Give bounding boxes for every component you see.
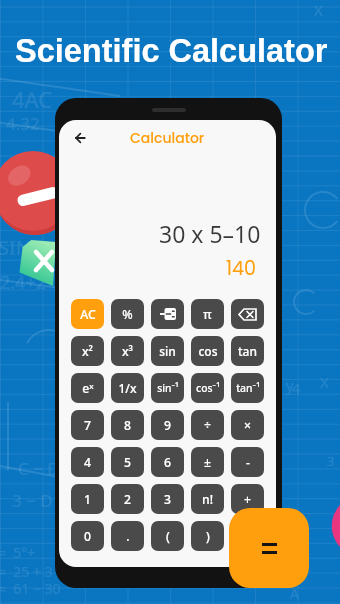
button[interactable]: tan⁻¹	[231, 373, 264, 403]
button[interactable]: Unit converter	[151, 299, 184, 329]
staticText: 2.4+2	[0, 270, 47, 295]
button[interactable]: 1/x	[111, 373, 144, 403]
staticText: n!	[202, 491, 213, 508]
staticText: 8	[124, 417, 131, 434]
staticText: π	[203, 306, 212, 323]
button[interactable]: 2	[111, 484, 144, 514]
staticText: X	[320, 372, 329, 392]
staticText: 4	[292, 378, 301, 398]
button[interactable]: 7	[71, 410, 104, 440]
button[interactable]: -	[231, 447, 264, 477]
staticText: sin	[159, 343, 176, 359]
staticText: = 25 + 3	[0, 562, 53, 581]
staticText: )	[206, 528, 210, 545]
button[interactable]: ÷	[191, 410, 224, 440]
staticText: C − D	[18, 457, 60, 480]
staticText: 1	[84, 491, 91, 508]
staticText: ÷	[204, 417, 211, 434]
staticText: 4	[84, 454, 91, 471]
button[interactable]: )	[191, 521, 224, 551]
button[interactable]: x²	[71, 336, 104, 366]
button[interactable]: π	[191, 299, 224, 329]
button[interactable]: n!	[191, 484, 224, 514]
staticText: sin⁻¹	[157, 381, 179, 395]
button[interactable]: 4	[71, 447, 104, 477]
staticText: 9	[164, 417, 171, 434]
staticText: 3	[327, 452, 335, 470]
button[interactable]: ×	[231, 410, 264, 440]
button[interactable]: sin	[151, 336, 184, 366]
staticText: 6	[164, 454, 171, 471]
button[interactable]: ±	[191, 447, 224, 477]
staticText: tan	[238, 343, 257, 359]
button[interactable]: 1	[71, 484, 104, 514]
staticText: 1/x	[118, 380, 137, 396]
staticText: y	[286, 375, 294, 395]
staticText: = 61 − 30	[0, 579, 61, 598]
staticText: Calculator	[130, 128, 205, 148]
staticText: 3	[164, 491, 171, 508]
button[interactable]: 8	[111, 410, 144, 440]
staticText: = 5°+	[0, 543, 36, 562]
staticText: x³	[122, 343, 133, 360]
button[interactable]: AC	[71, 299, 104, 329]
staticText: A	[290, 584, 299, 603]
button[interactable]: Back	[59, 123, 101, 153]
staticText: eˣ	[82, 380, 94, 397]
staticText: Scientific Calculator	[15, 33, 328, 69]
staticText: -	[246, 454, 250, 471]
button[interactable]: 0	[71, 521, 104, 551]
staticText: SIN	[0, 234, 31, 261]
staticText: 0	[84, 528, 91, 545]
staticText: AC	[80, 306, 96, 323]
button[interactable]: 9	[151, 410, 184, 440]
button[interactable]: tan	[231, 336, 264, 366]
button[interactable]: cos	[191, 336, 224, 366]
staticText: 140	[226, 255, 256, 282]
staticText: ×	[244, 417, 251, 434]
staticText: 30 x 5–10	[159, 218, 261, 249]
staticText: x²	[82, 343, 93, 360]
button[interactable]: Equals	[229, 508, 309, 588]
button[interactable]: 5	[111, 447, 144, 477]
button[interactable]: eˣ	[71, 373, 104, 403]
button[interactable]: x³	[111, 336, 144, 366]
staticText: tan⁻¹	[236, 381, 260, 395]
button[interactable]: cos⁻¹	[191, 373, 224, 403]
button[interactable]: (	[151, 521, 184, 551]
staticText: cos⁻¹	[196, 381, 220, 395]
button[interactable]: 3	[151, 484, 184, 514]
staticText: .	[126, 528, 130, 545]
button[interactable]: 6	[151, 447, 184, 477]
staticText: ±	[204, 454, 211, 471]
button[interactable]: sin⁻¹	[151, 373, 184, 403]
staticText: cos	[198, 343, 218, 359]
staticText: 3 − D	[12, 489, 53, 512]
staticText: 4.32	[6, 112, 40, 135]
other: Backspace	[238, 308, 257, 321]
staticText: X	[314, 0, 323, 20]
button[interactable]: Backspace	[231, 299, 264, 329]
button[interactable]: .	[111, 521, 144, 551]
staticText: 2	[124, 491, 131, 508]
staticText: 4AC	[12, 84, 53, 114]
staticText: 5	[124, 454, 131, 471]
other: Unit converter	[160, 308, 176, 320]
staticText: 7	[84, 417, 91, 434]
button[interactable]: %	[111, 299, 144, 329]
staticText: %	[122, 306, 133, 323]
button[interactable]: +	[231, 484, 264, 514]
staticText: +	[244, 491, 251, 508]
staticText: (	[166, 528, 170, 545]
